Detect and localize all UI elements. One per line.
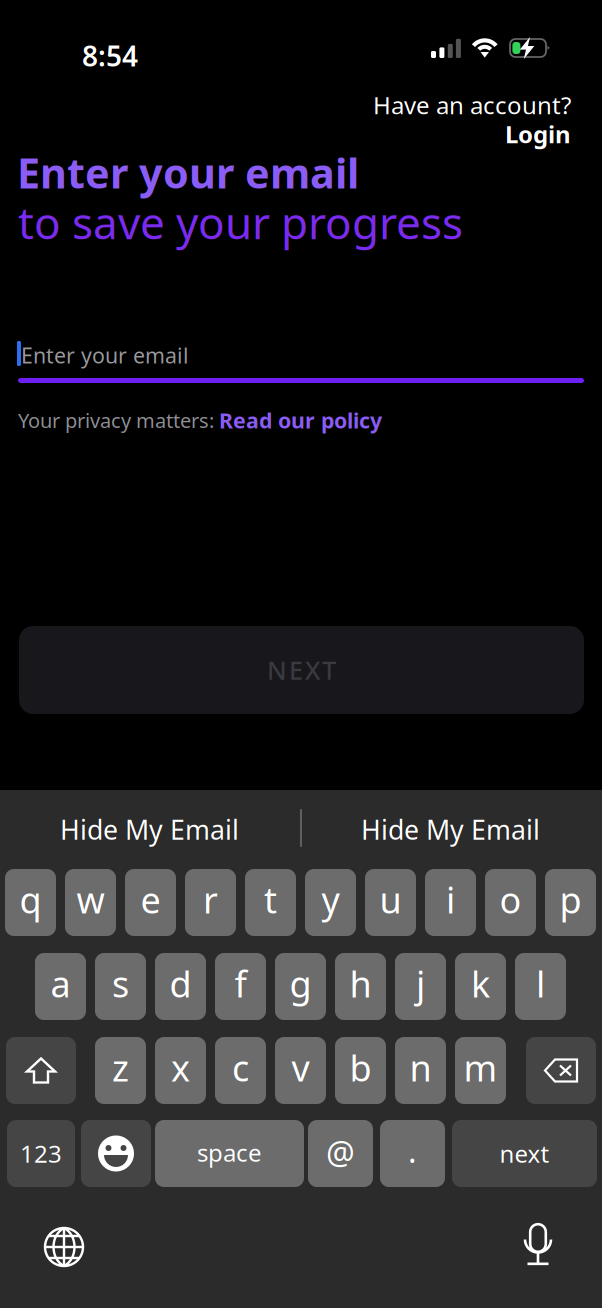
button[interactable]: v xyxy=(275,1037,326,1104)
staticText: e xyxy=(140,876,160,923)
staticText: Enter your email xyxy=(21,341,189,369)
staticText: z xyxy=(112,1044,129,1091)
staticText: next xyxy=(499,1138,549,1169)
button[interactable]: c xyxy=(215,1037,266,1104)
staticText: q xyxy=(19,876,41,923)
staticText: d xyxy=(169,960,191,1007)
staticText: c xyxy=(232,1044,249,1091)
button[interactable]: z xyxy=(95,1037,146,1104)
staticText: v xyxy=(291,1044,309,1091)
button[interactable]: n xyxy=(395,1037,446,1104)
staticText: s xyxy=(112,960,129,1007)
button[interactable]: space xyxy=(155,1120,304,1187)
button[interactable]: i xyxy=(425,869,476,936)
button[interactable]: Read our policy xyxy=(219,406,382,434)
staticText: o xyxy=(499,876,521,923)
button[interactable]: l xyxy=(515,953,566,1020)
button[interactable]: e xyxy=(125,869,176,936)
button[interactable]: . xyxy=(380,1120,445,1187)
button[interactable]: Emoji xyxy=(81,1120,151,1187)
staticText: n xyxy=(409,1044,431,1091)
button[interactable]: k xyxy=(455,953,506,1020)
staticText: to save your progress xyxy=(18,193,463,251)
button[interactable]: o xyxy=(485,869,536,936)
button[interactable]: w xyxy=(65,869,116,936)
staticText: . xyxy=(408,1129,417,1172)
button[interactable]: @ xyxy=(308,1120,373,1187)
staticText: u xyxy=(379,876,401,923)
staticText: @ xyxy=(326,1131,355,1174)
staticText: p xyxy=(559,876,581,923)
button[interactable]: r xyxy=(185,869,236,936)
staticText: Login xyxy=(505,118,571,150)
button[interactable]: t xyxy=(245,869,296,936)
button[interactable]: f xyxy=(215,953,266,1020)
staticText: k xyxy=(471,960,490,1007)
button[interactable]: d xyxy=(155,953,206,1020)
button[interactable]: a xyxy=(35,953,86,1020)
button[interactable]: Delete xyxy=(526,1037,596,1104)
button[interactable]: b xyxy=(335,1037,386,1104)
button[interactable]: s xyxy=(95,953,146,1020)
staticText: f xyxy=(234,960,246,1007)
button[interactable]: q xyxy=(5,869,56,936)
button[interactable]: x xyxy=(155,1037,206,1104)
button[interactable]: NEXT xyxy=(19,626,584,714)
button[interactable]: Switch keyboard xyxy=(30,1218,98,1276)
button[interactable]: u xyxy=(365,869,416,936)
staticText: i xyxy=(446,876,455,923)
staticText: m xyxy=(463,1044,497,1091)
button[interactable]: 123 xyxy=(7,1120,75,1187)
staticText: Hide My Email xyxy=(60,812,239,847)
staticText: j xyxy=(416,960,425,1007)
staticText: Enter your email xyxy=(17,145,359,200)
button[interactable]: Login xyxy=(0,118,571,150)
staticText: Read our policy xyxy=(219,406,382,434)
button[interactable]: Shift xyxy=(6,1037,76,1104)
button[interactable]: next xyxy=(452,1120,597,1187)
staticText: Have an account? xyxy=(373,89,571,121)
staticText: Hide My Email xyxy=(361,812,540,847)
staticText: l xyxy=(536,960,545,1007)
button[interactable]: j xyxy=(395,953,446,1020)
staticText: space xyxy=(197,1137,262,1168)
staticText: 123 xyxy=(20,1138,62,1169)
staticText: t xyxy=(264,876,277,923)
staticText: x xyxy=(171,1044,190,1091)
staticText: b xyxy=(349,1044,371,1091)
staticText: Your privacy matters: xyxy=(18,407,219,433)
staticText: w xyxy=(76,876,104,923)
button[interactable]: Hide My Email xyxy=(0,790,299,869)
button[interactable]: y xyxy=(305,869,356,936)
staticText: y xyxy=(321,876,339,923)
button[interactable]: Dictate xyxy=(504,1216,572,1274)
staticText: g xyxy=(289,960,311,1007)
button[interactable]: h xyxy=(335,953,386,1020)
staticText: a xyxy=(50,960,70,1007)
button[interactable]: Hide My Email xyxy=(299,790,602,869)
staticText: h xyxy=(349,960,371,1007)
staticText: 8:54 xyxy=(82,37,138,74)
button[interactable]: p xyxy=(545,869,596,936)
staticText: NEXT xyxy=(267,653,336,687)
staticText: r xyxy=(203,876,218,923)
button[interactable]: g xyxy=(275,953,326,1020)
button[interactable]: m xyxy=(455,1037,506,1104)
